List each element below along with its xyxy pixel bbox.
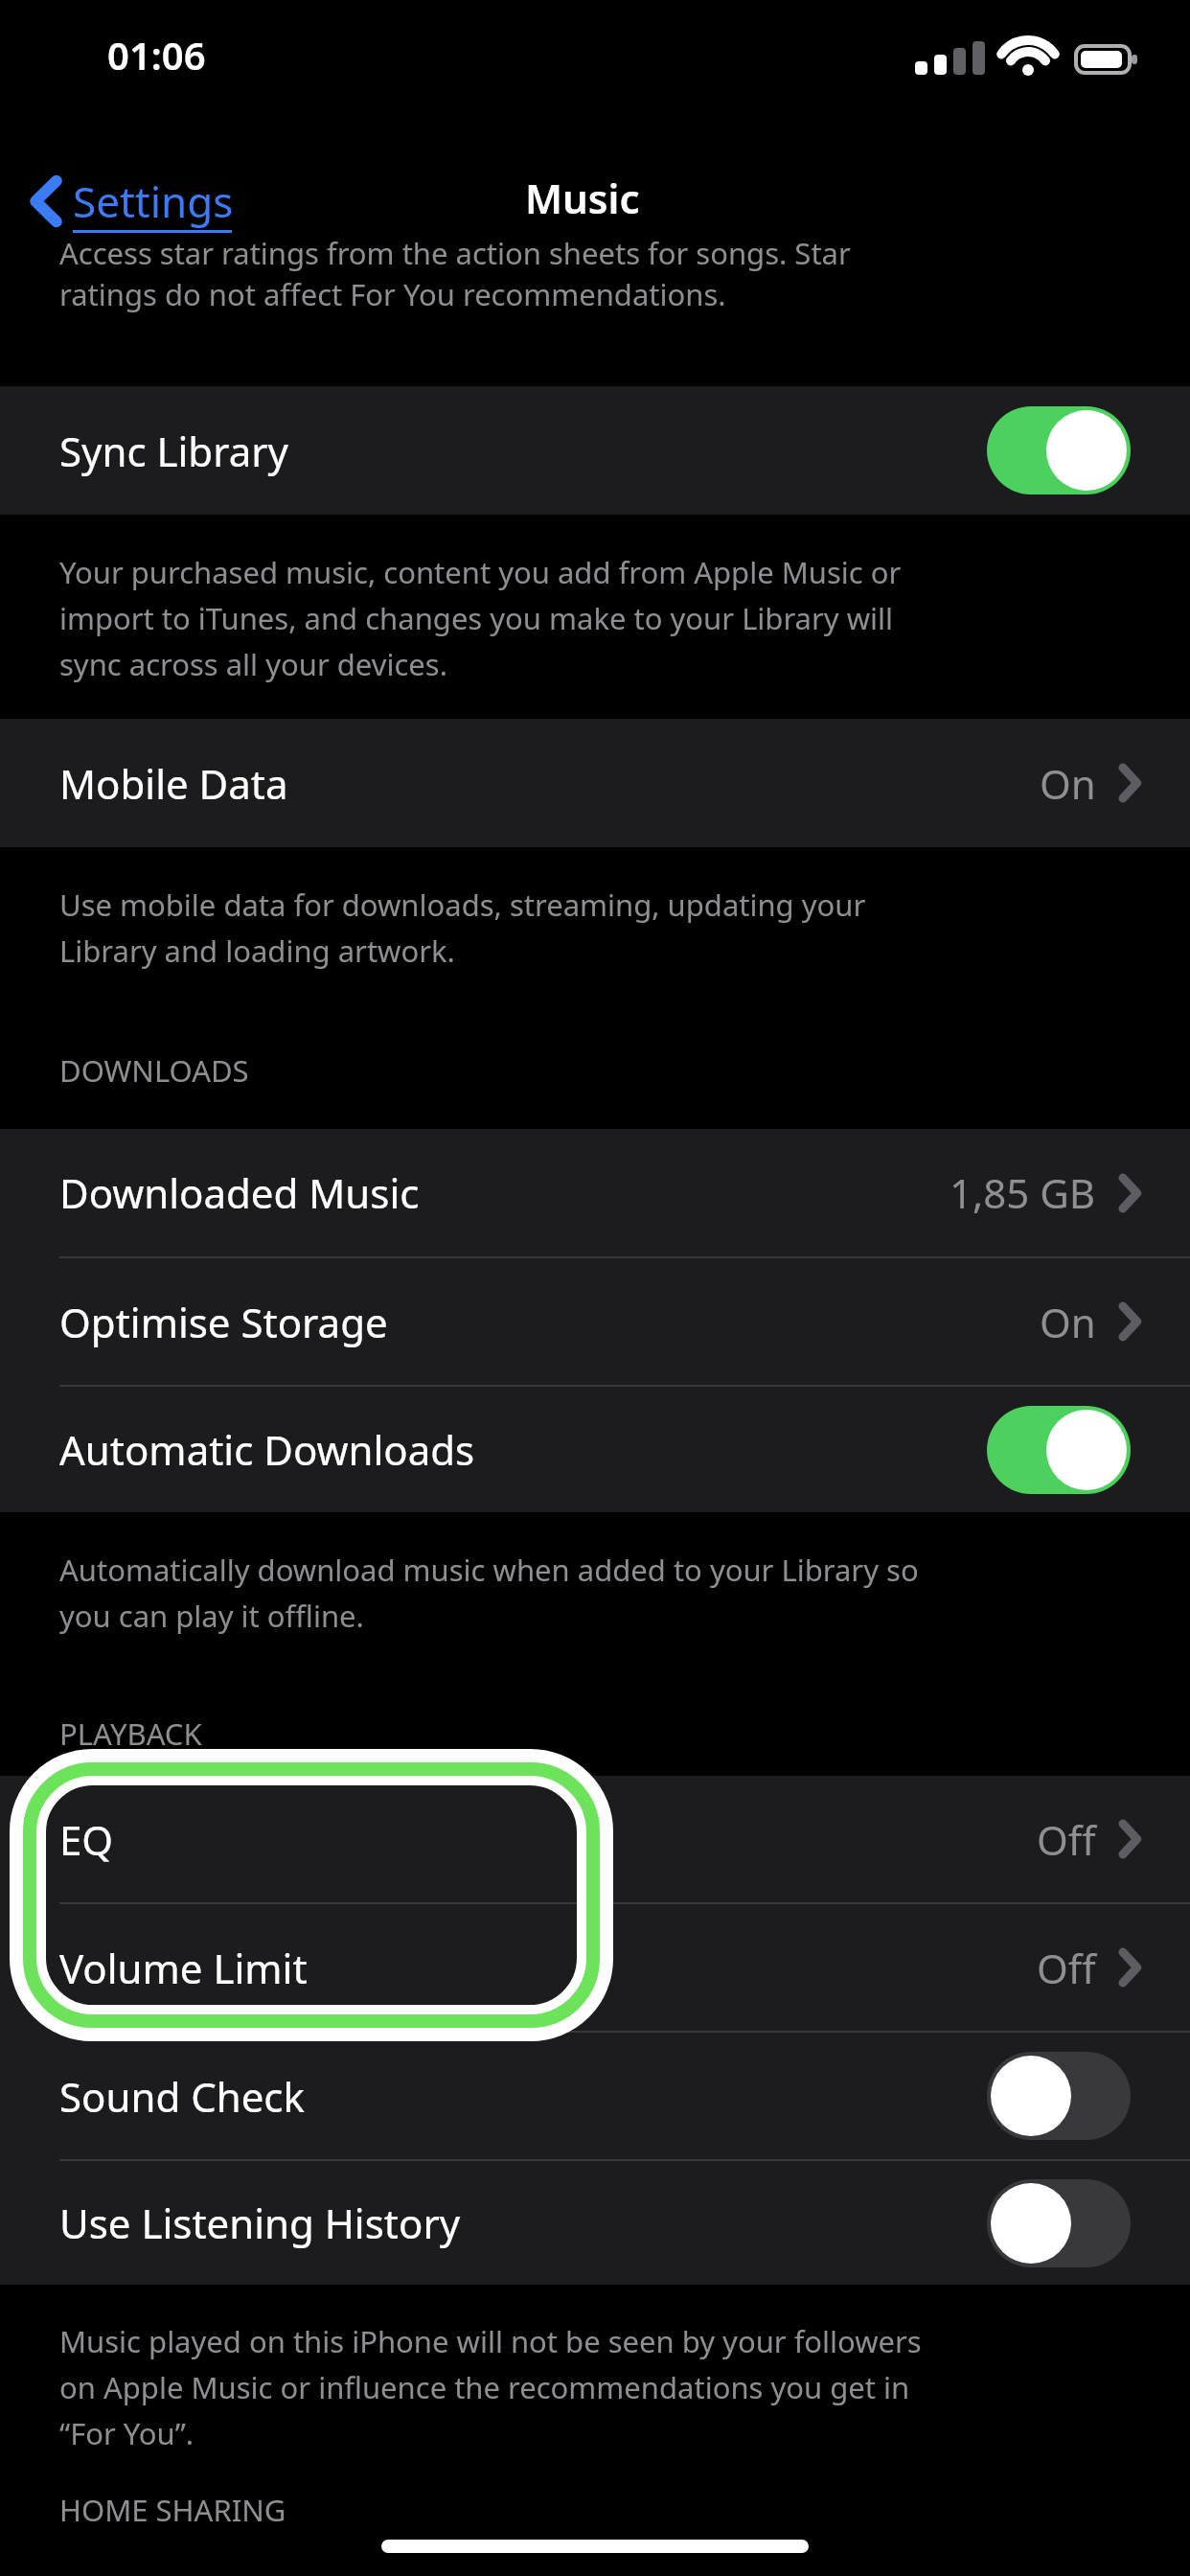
staticText: Sound Check <box>59 2069 305 2124</box>
staticText: On <box>1040 756 1096 811</box>
staticText: Your purchased music, content you add fr… <box>59 552 1161 684</box>
staticText: EQ <box>59 1812 114 1867</box>
button[interactable]: Sound Check, off <box>987 2052 1131 2140</box>
staticText: Use mobile data for downloads, streaming… <box>59 885 1161 971</box>
staticText: Settings <box>73 172 234 230</box>
staticText: Sync Library <box>59 424 289 478</box>
staticText: 01:06 <box>107 29 206 80</box>
button[interactable]: Use Listening History, off <box>987 2179 1131 2267</box>
staticText: Optimise Storage <box>59 1295 388 1349</box>
staticText: Music <box>525 171 640 225</box>
button[interactable]: Automatic Downloads <box>0 1387 1190 1512</box>
staticText: PLAYBACK <box>59 1713 202 1754</box>
button[interactable]: Sync Library <box>0 386 1190 515</box>
button[interactable]: Automatic Downloads, on <box>987 1406 1131 1494</box>
button[interactable]: Downloaded Music <box>0 1129 1190 1256</box>
staticText: Off <box>1037 1941 1096 1995</box>
button[interactable]: Sync Library, on <box>987 406 1131 494</box>
button[interactable]: Sound Check <box>0 2033 1190 2159</box>
staticText: Automatically download music when added … <box>59 1550 1161 1636</box>
button[interactable]: Use Listening History <box>0 2161 1190 2285</box>
staticText: Use Listening History <box>59 2196 461 2250</box>
button[interactable]: EQ <box>0 1776 1190 1902</box>
staticText: Automatic Downloads <box>59 1422 475 1477</box>
staticText: Mobile Data <box>59 756 288 811</box>
staticText: Volume Limit <box>59 1941 308 1995</box>
staticText: Off <box>1037 1812 1096 1867</box>
button[interactable]: Optimise Storage <box>0 1258 1190 1385</box>
staticText: Access star ratings from the action shee… <box>59 233 1152 314</box>
button[interactable]: Mobile Data <box>0 719 1190 847</box>
button[interactable]: Settings <box>29 153 234 249</box>
staticText: Downloaded Music <box>59 1165 420 1220</box>
staticText: HOME SHARING <box>59 2490 286 2530</box>
staticText: DOWNLOADS <box>59 1050 249 1091</box>
button[interactable]: Volume Limit <box>0 1904 1190 2031</box>
staticText: 1,85 GB <box>950 1165 1096 1220</box>
staticText: On <box>1040 1295 1096 1349</box>
staticText: Music played on this iPhone will not be … <box>59 2321 1161 2453</box>
